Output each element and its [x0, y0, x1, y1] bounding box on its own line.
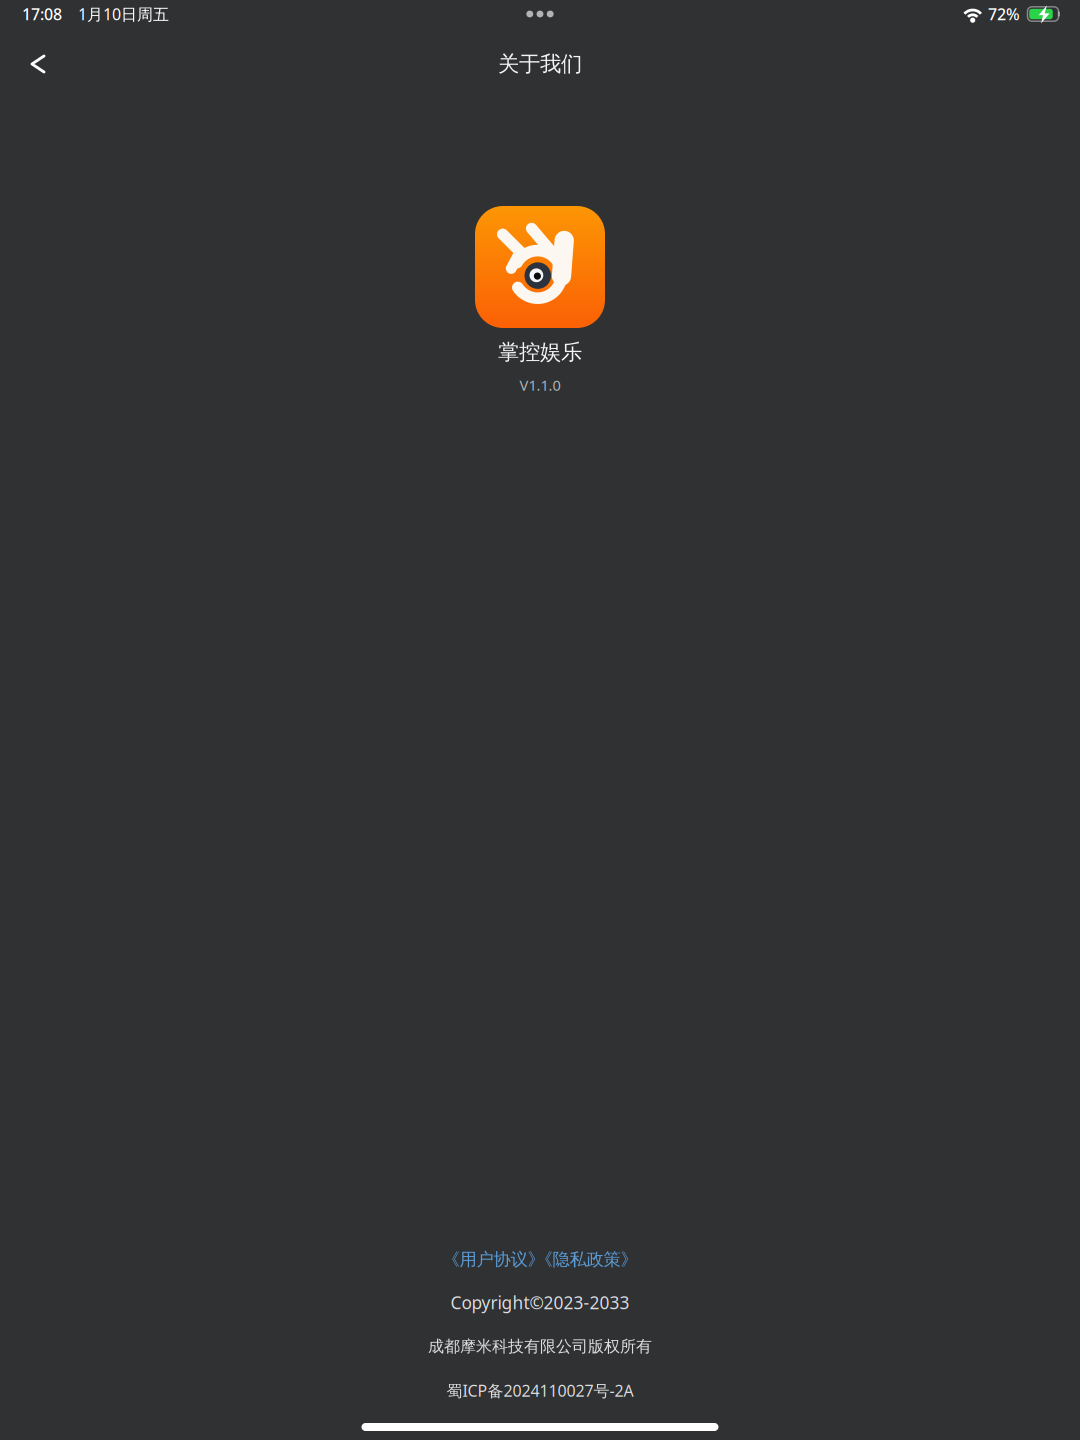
staticText: 掌控娱乐: [498, 339, 582, 365]
button[interactable]: 《用户协议》: [442, 1249, 544, 1270]
staticText: Copyright©2023-2033: [450, 1291, 629, 1314]
staticText: 《用户协议》: [442, 1249, 544, 1270]
staticText: 成都摩米科技有限公司版权所有: [428, 1337, 652, 1356]
staticText: 72%: [988, 3, 1020, 25]
staticText: V1.1.0: [519, 375, 560, 395]
button[interactable]: Back: [0, 38, 60, 90]
staticText: 1月10日周五: [78, 3, 169, 25]
staticText: 17:08: [22, 3, 62, 25]
staticText: 蜀ICP备2024110027号-2A: [446, 1380, 633, 1401]
staticText: 《隐私政策》: [535, 1249, 637, 1270]
button[interactable]: 《隐私政策》: [535, 1249, 637, 1270]
staticText: 关于我们: [498, 51, 582, 77]
